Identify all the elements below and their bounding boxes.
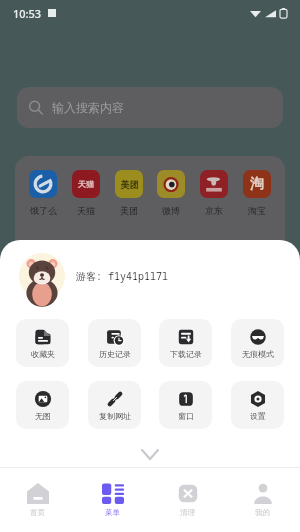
button[interactable]: 游客: f1y41p1l7l <box>18 252 300 300</box>
button[interactable]: 美团 <box>110 170 148 216</box>
staticText: 清理 <box>180 508 195 517</box>
staticText: 窗口 <box>178 411 194 421</box>
staticText: 菜单 <box>105 508 120 517</box>
button[interactable]: 饿了么 <box>24 170 62 216</box>
button[interactable]: 收藏夹 <box>16 319 69 367</box>
staticText: 下载记录 <box>170 349 202 359</box>
button[interactable]: 清理 <box>150 468 225 532</box>
staticText: 微博 <box>162 205 180 216</box>
button[interactable]: 天猫 <box>67 170 105 216</box>
button[interactable]: 设置 <box>231 381 284 429</box>
button[interactable]: 京东 <box>195 170 233 216</box>
button[interactable]: 首页 <box>0 468 75 532</box>
staticText: 美团 <box>118 179 141 190</box>
staticText: 京东 <box>205 205 223 216</box>
staticText: 无图 <box>35 411 51 421</box>
staticText: 游客: f1y41p1l7l <box>76 269 168 283</box>
staticText: 淘 <box>245 175 269 193</box>
button[interactable]: 微博 <box>152 170 190 216</box>
staticText: 输入搜索内容 <box>52 100 124 115</box>
button[interactable]: Collapse <box>0 441 300 467</box>
staticText: 首页 <box>30 508 45 517</box>
button[interactable]: 历史记录 <box>88 319 141 367</box>
staticText: 我的 <box>255 508 270 517</box>
staticText: 天猫 <box>77 205 95 216</box>
staticText: 淘宝 <box>248 205 266 216</box>
staticText: 饿了么 <box>30 205 57 216</box>
staticText: 10:53 <box>13 6 42 21</box>
staticText: 美团 <box>120 205 138 216</box>
button[interactable]: 输入搜索内容 <box>17 87 283 128</box>
button[interactable]: 菜单 <box>75 468 150 532</box>
button[interactable]: 窗口 <box>159 381 212 429</box>
button[interactable]: 无图 <box>16 381 69 429</box>
staticText: 历史记录 <box>99 349 131 359</box>
button[interactable]: 我的 <box>225 468 300 532</box>
staticText: 设置 <box>250 411 266 421</box>
staticText: 无痕模式 <box>242 349 274 359</box>
button[interactable]: 淘 <box>238 170 276 216</box>
button[interactable]: 复制网址 <box>88 381 141 429</box>
staticText: 收藏夹 <box>31 349 55 359</box>
staticText: 复制网址 <box>99 411 131 421</box>
button[interactable]: 无痕模式 <box>231 319 284 367</box>
button[interactable]: 下载记录 <box>159 319 212 367</box>
staticText: 天猫 <box>75 179 97 189</box>
